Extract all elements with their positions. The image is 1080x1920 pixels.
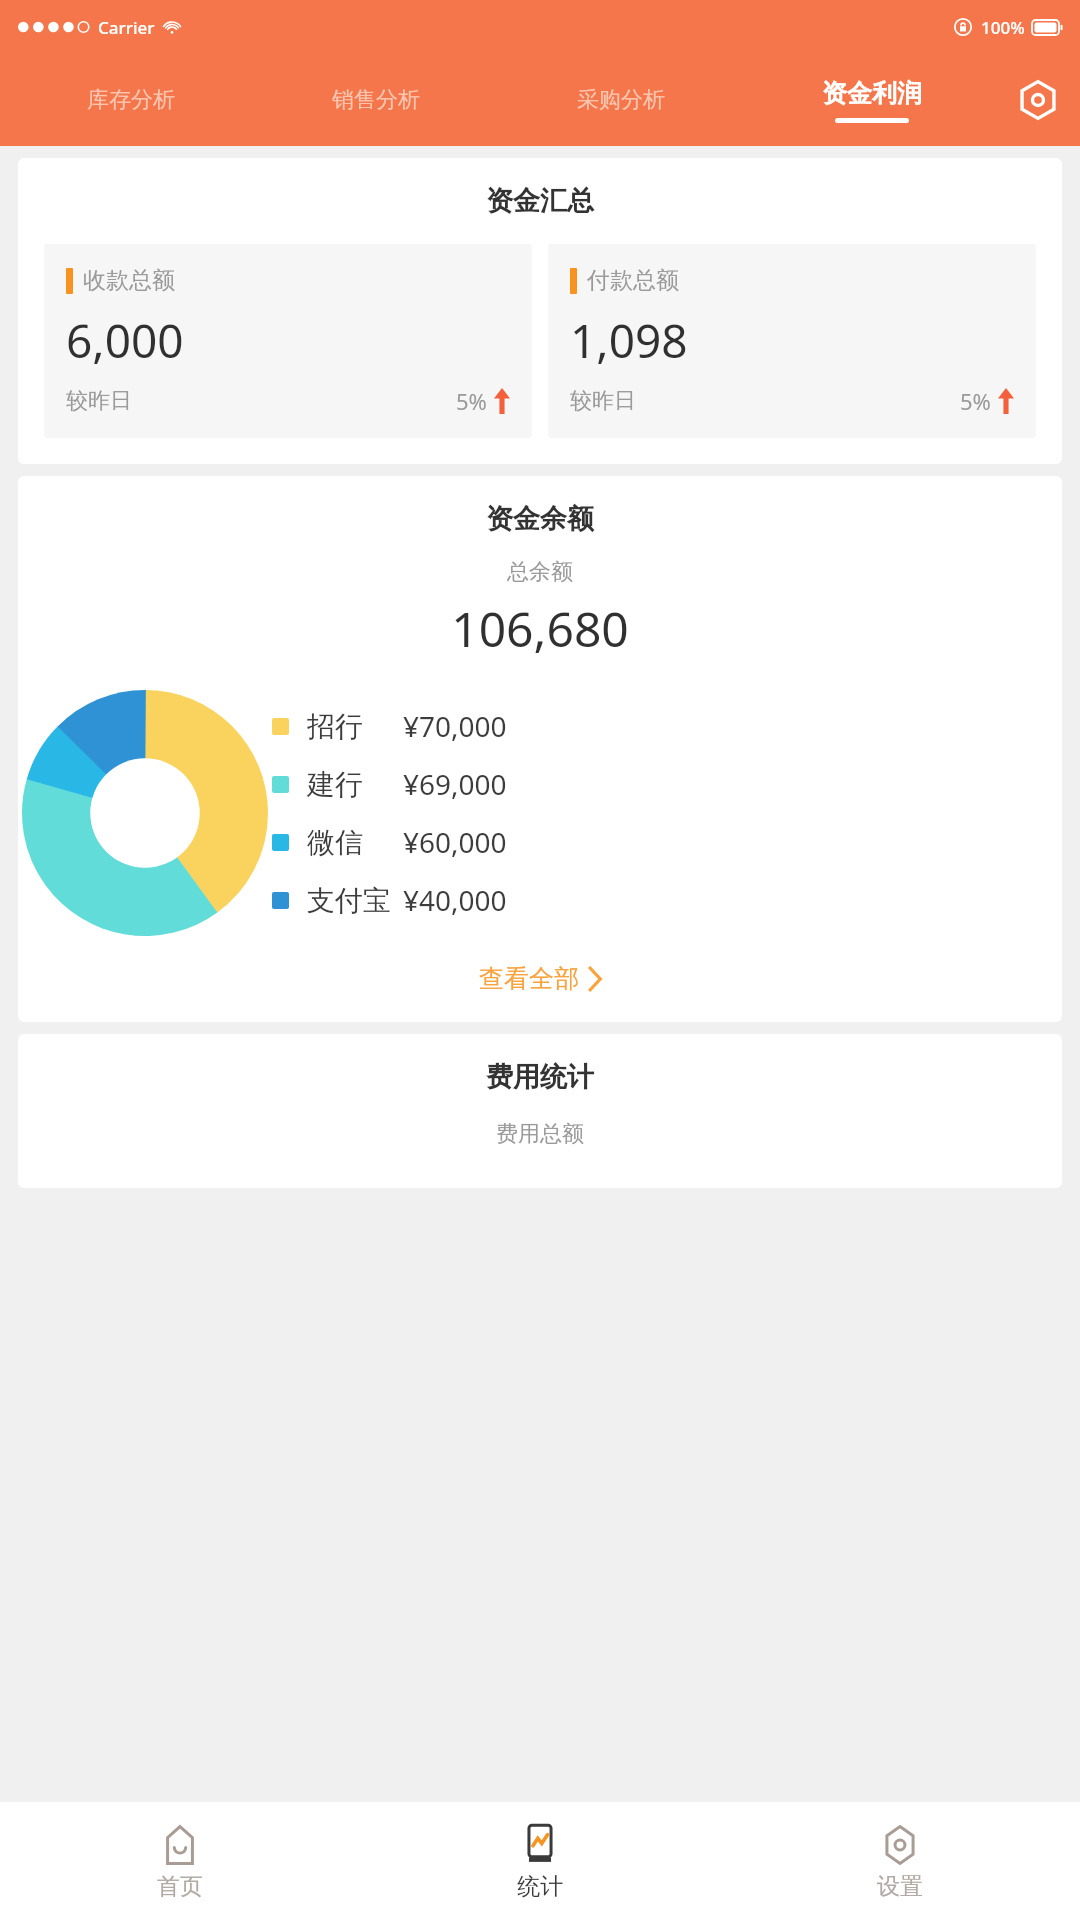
staticText: 较昨日 — [66, 387, 132, 415]
staticText: 招行 — [307, 709, 363, 744]
staticText: 采购分析 — [577, 86, 665, 114]
staticText: 总余额 — [18, 558, 1062, 586]
staticText: 首页 — [157, 1872, 203, 1901]
staticText: 1,098 — [570, 309, 688, 372]
button[interactable]: 收款总额 — [44, 244, 532, 438]
staticText: 费用总额 — [18, 1120, 1062, 1148]
staticText: 查看全部 — [479, 963, 579, 994]
staticText: 销售分析 — [332, 86, 420, 114]
staticText: 微信 — [307, 825, 363, 860]
button[interactable]: 销售分析 — [253, 54, 498, 146]
staticText: 106,680 — [18, 596, 1062, 661]
staticText: 资金余额 — [18, 502, 1062, 536]
staticText: ¥40,000 — [403, 881, 507, 919]
staticText: 设置 — [877, 1872, 923, 1901]
button[interactable]: 设置 — [720, 1802, 1080, 1920]
staticText: ¥60,000 — [403, 823, 507, 861]
staticText: 支付宝 — [307, 883, 391, 918]
staticText: ¥69,000 — [403, 765, 507, 803]
staticText: 5% — [960, 386, 991, 416]
staticText: 收款总额 — [83, 266, 175, 295]
staticText: ¥70,000 — [403, 707, 507, 745]
staticText: 费用统计 — [18, 1060, 1062, 1094]
button[interactable]: 统计 — [360, 1802, 720, 1920]
staticText: 统计 — [517, 1872, 563, 1901]
button[interactable]: 首页 — [0, 1802, 360, 1920]
button[interactable]: 采购分析 — [498, 54, 743, 146]
staticText: 建行 — [307, 767, 363, 802]
staticText: 库存分析 — [87, 86, 175, 114]
button[interactable]: 查看全部 — [18, 953, 1062, 1004]
button[interactable]: 库存分析 — [8, 54, 253, 146]
staticText: 100% — [981, 16, 1025, 39]
button[interactable]: 资金利润 — [743, 54, 1000, 146]
button[interactable]: 付款总额 — [548, 244, 1036, 438]
staticText: 5% — [456, 386, 487, 416]
staticText: 付款总额 — [587, 266, 679, 295]
staticText: 资金利润 — [822, 78, 922, 109]
staticText: 资金汇总 — [18, 184, 1062, 218]
staticText: 较昨日 — [570, 387, 636, 415]
staticText: Carrier — [98, 16, 155, 39]
button[interactable]: Settings — [1000, 54, 1076, 146]
staticText: 6,000 — [66, 309, 184, 372]
